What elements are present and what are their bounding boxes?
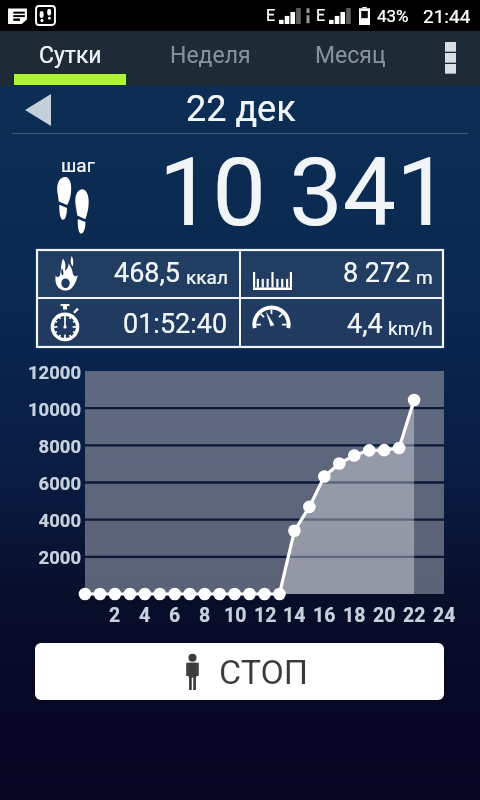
staticText: Неделя bbox=[170, 42, 251, 69]
staticText: 6 bbox=[169, 604, 181, 626]
staticText: km/h bbox=[388, 317, 433, 339]
staticText: 18 bbox=[343, 604, 366, 626]
staticText: 2000 bbox=[38, 547, 81, 569]
staticText: 8 272 bbox=[343, 257, 411, 289]
staticText: 4 bbox=[139, 604, 151, 626]
staticText: 01:52:40 bbox=[123, 308, 228, 340]
staticText: 468,5 bbox=[114, 257, 181, 289]
button[interactable]: Сутки bbox=[0, 31, 140, 86]
staticText: 8000 bbox=[38, 436, 81, 458]
staticText: шаг bbox=[61, 154, 95, 176]
staticText: 12 bbox=[254, 604, 277, 626]
staticText: 10 bbox=[224, 604, 247, 626]
staticText: Сутки bbox=[39, 42, 102, 69]
staticText: 6000 bbox=[38, 473, 81, 495]
staticText: СТОП bbox=[219, 652, 309, 692]
staticText: 4,4 bbox=[347, 308, 383, 340]
staticText: Месяц bbox=[315, 42, 386, 69]
button[interactable]: Previous day bbox=[14, 88, 62, 132]
staticText: E bbox=[266, 6, 276, 25]
staticText: 43% bbox=[377, 6, 409, 26]
staticText: 10000 bbox=[27, 399, 81, 421]
staticText: 2 bbox=[109, 604, 121, 626]
button[interactable]: 8 272 bbox=[241, 249, 444, 297]
staticText: ккал bbox=[186, 266, 228, 288]
button[interactable]: More options bbox=[420, 31, 480, 86]
staticText: 22 bbox=[403, 604, 426, 626]
staticText: 4000 bbox=[38, 510, 81, 532]
button[interactable]: Месяц bbox=[280, 31, 420, 86]
button[interactable]: 468,5 bbox=[36, 249, 239, 297]
staticText: 12000 bbox=[27, 362, 81, 384]
staticText: E bbox=[316, 6, 326, 25]
staticText: m bbox=[416, 266, 433, 288]
staticText: 24 bbox=[433, 604, 456, 626]
button[interactable]: 01:52:40 bbox=[36, 299, 239, 348]
staticText: 10 341 bbox=[159, 137, 450, 248]
button[interactable]: 4,4 bbox=[241, 299, 444, 348]
button[interactable]: Неделя bbox=[140, 31, 280, 86]
staticText: 16 bbox=[313, 604, 336, 626]
staticText: 8 bbox=[199, 604, 211, 626]
staticText: 22 дек bbox=[186, 88, 296, 130]
staticText: 21:44 bbox=[423, 5, 471, 27]
staticText: 20 bbox=[373, 604, 396, 626]
button[interactable]: СТОП bbox=[35, 643, 444, 700]
staticText: 14 bbox=[283, 604, 306, 626]
